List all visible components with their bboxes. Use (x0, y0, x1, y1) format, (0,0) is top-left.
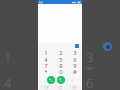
staticText: DEF (86, 66, 94, 71)
staticText: 8 (59, 62, 63, 68)
staticText: 4 (44, 56, 48, 62)
staticText: 6 (86, 74, 94, 90)
staticText: 3 (73, 49, 77, 56)
staticText: 5 (59, 56, 63, 62)
button[interactable]: Favorites (68, 85, 80, 90)
staticText: 1 (4, 48, 12, 66)
button[interactable]: Call with SIM 1 (47, 76, 55, 84)
staticText: 1 (44, 49, 48, 56)
staticText: 0 (59, 68, 63, 74)
button[interactable]: 8 (54, 62, 67, 68)
staticText: 4 (4, 74, 12, 90)
button[interactable]: 6 (68, 56, 81, 62)
staticText: 7 (44, 62, 48, 68)
staticText: * (44, 68, 48, 74)
button[interactable]: 5 (54, 56, 67, 62)
staticText: 6 (73, 56, 77, 62)
button[interactable]: 2 (54, 49, 67, 56)
staticText: # (73, 68, 77, 74)
button[interactable]: 1 (39, 49, 52, 56)
button[interactable]: Backspace (75, 44, 79, 48)
button[interactable]: More options (69, 77, 74, 82)
button[interactable]: 9 (68, 62, 81, 68)
button[interactable]: Call with SIM 2 (57, 76, 65, 84)
button[interactable]: 4 (39, 56, 52, 62)
button[interactable]: 0 (54, 68, 67, 74)
button[interactable]: 7 (39, 62, 52, 68)
staticText: 3 (86, 48, 94, 66)
button[interactable]: # (68, 68, 81, 74)
button[interactable]: * (39, 68, 52, 74)
staticText: 2 (59, 49, 63, 56)
button[interactable]: Recents (40, 85, 52, 90)
staticText: 9 (73, 62, 77, 68)
button[interactable]: Contacts (54, 85, 66, 90)
button[interactable]: 3 (68, 49, 81, 56)
